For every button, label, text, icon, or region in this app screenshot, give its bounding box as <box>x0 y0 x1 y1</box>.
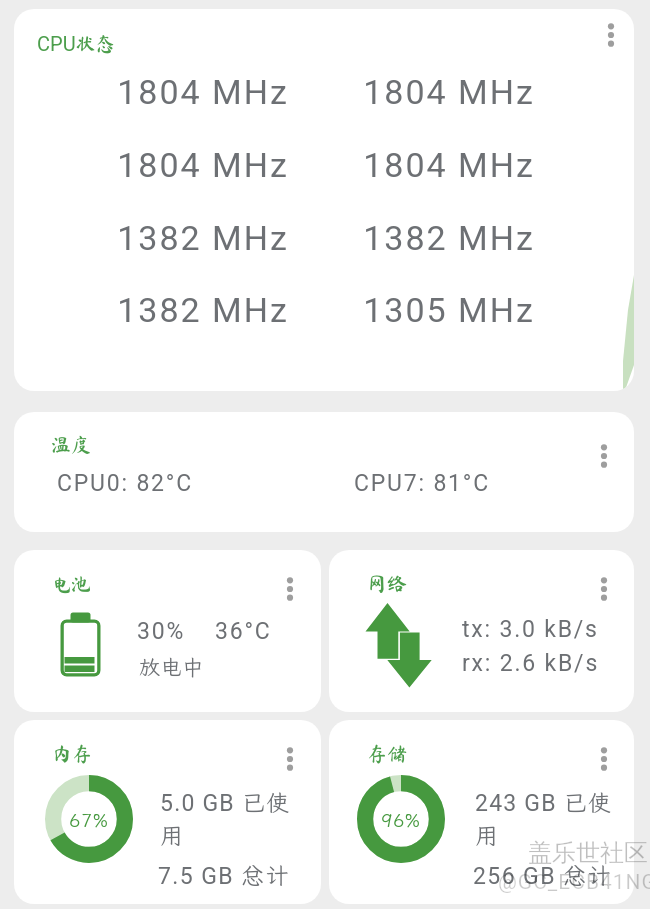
staticText: 36°C <box>215 618 272 645</box>
button[interactable]: More options <box>276 741 304 777</box>
button[interactable]: 存储 <box>329 720 634 904</box>
staticText: 1804 MHz <box>78 72 328 112</box>
staticText: 网络 <box>367 573 407 593</box>
staticText: CPU状态 <box>37 32 116 55</box>
button[interactable]: More options <box>590 571 618 607</box>
staticText: 电池 <box>51 573 91 593</box>
staticText: 5.0 GB 已使用 <box>160 787 296 850</box>
staticText: 256 GB 总计 <box>473 860 612 890</box>
button[interactable]: 温度 <box>14 412 634 532</box>
staticText: 盖乐世社区 <box>528 838 648 868</box>
staticText: 内存 <box>52 743 92 763</box>
staticText: rx: 2.6 kB/s <box>462 650 600 677</box>
staticText: 温度 <box>51 434 91 454</box>
button[interactable]: CPU状态 <box>14 9 634 391</box>
staticText: @GC_ECB41NG <box>498 870 650 895</box>
button[interactable]: 网络 <box>329 550 634 712</box>
staticText: 1804 MHz <box>78 145 328 185</box>
button[interactable]: More options <box>590 741 618 777</box>
staticText: 1804 MHz <box>324 145 574 185</box>
staticText: 30% <box>137 618 186 645</box>
staticText: 存储 <box>367 743 407 763</box>
staticText: 96% <box>381 807 421 832</box>
button[interactable]: More options <box>597 17 625 53</box>
button[interactable]: More options <box>590 438 618 474</box>
staticText: 7.5 GB 总计 <box>158 860 290 890</box>
staticText: CPU0: 82°C <box>57 470 194 497</box>
staticText: 1382 MHz <box>78 218 328 258</box>
staticText: 243 GB 已使用 <box>475 787 614 850</box>
staticText: 67% <box>69 807 109 832</box>
staticText: CPU7: 81°C <box>354 470 491 497</box>
button[interactable]: 电池 <box>14 550 321 712</box>
staticText: 1382 MHz <box>324 218 574 258</box>
staticText: tx: 3.0 kB/s <box>462 616 599 643</box>
staticText: 1804 MHz <box>324 72 574 112</box>
staticText: 放电中 <box>139 653 204 681</box>
staticText: 1382 MHz <box>78 290 328 330</box>
staticText: 1305 MHz <box>324 290 574 330</box>
button[interactable]: More options <box>276 571 304 607</box>
button[interactable]: 内存 <box>14 720 321 904</box>
